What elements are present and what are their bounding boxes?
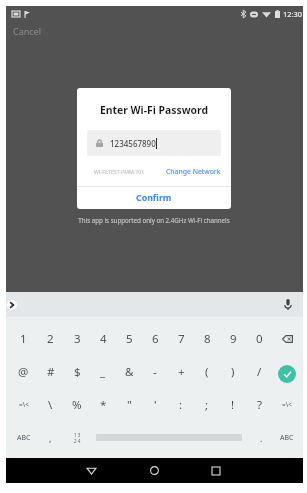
button[interactable]: 1	[10, 322, 37, 355]
staticText: !	[231, 397, 235, 413]
staticText: )	[231, 364, 235, 380]
button[interactable]: 7	[168, 322, 194, 355]
staticText: %	[72, 397, 82, 413]
button[interactable]: @	[10, 355, 37, 388]
button[interactable]: -	[142, 355, 168, 388]
button[interactable]: Back	[73, 458, 109, 483]
other: Enter	[278, 365, 296, 383]
staticText: 12:30	[283, 9, 302, 19]
button[interactable]: More suggestions	[6, 292, 18, 317]
staticText: WI-FI:TEST-PMM-701	[94, 168, 145, 175]
button[interactable]: )	[220, 355, 246, 388]
staticText: _	[100, 364, 106, 380]
button[interactable]: +	[168, 355, 194, 388]
button[interactable]: 6	[142, 322, 168, 355]
staticText: #	[47, 364, 55, 380]
staticText: $	[74, 364, 81, 380]
button[interactable]: !	[220, 388, 246, 421]
button[interactable]: ABC	[10, 421, 37, 454]
button[interactable]: Fractions	[64, 421, 90, 454]
staticText: 1	[20, 331, 27, 347]
staticText: 9	[230, 331, 237, 347]
staticText: :	[179, 397, 183, 413]
button[interactable]: ?	[246, 388, 272, 421]
button[interactable]: =\<	[10, 388, 37, 421]
staticText: Cancel	[13, 25, 42, 37]
staticText: \	[48, 397, 53, 413]
staticText: This app is supported only on 2.4GHz Wi-…	[70, 216, 238, 224]
staticText: 0	[256, 331, 263, 347]
button[interactable]: 8	[194, 322, 220, 355]
staticText: 4	[100, 331, 107, 347]
staticText: 8	[204, 331, 211, 347]
button[interactable]: ;	[194, 388, 220, 421]
staticText: ABC	[17, 433, 31, 443]
button[interactable]: %	[64, 388, 90, 421]
button[interactable]: \	[37, 388, 64, 421]
staticText: 1234567890	[110, 138, 156, 149]
button[interactable]: 1234567890	[87, 130, 221, 156]
button[interactable]: Voice input	[272, 292, 303, 317]
staticText: -	[153, 364, 157, 380]
button[interactable]: ABC	[274, 421, 300, 454]
button[interactable]: Home	[136, 458, 172, 483]
button[interactable]: '	[142, 388, 168, 421]
button[interactable]: #	[37, 355, 64, 388]
staticText: +	[178, 364, 185, 380]
staticText: /	[257, 364, 262, 380]
staticText: *	[100, 397, 107, 413]
button[interactable]: 2	[37, 322, 64, 355]
button[interactable]: Space	[90, 421, 248, 454]
button[interactable]: 5	[116, 322, 142, 355]
button[interactable]: ,	[37, 421, 64, 454]
staticText: (	[205, 364, 209, 380]
button[interactable]: Recents	[198, 458, 234, 483]
button[interactable]: "	[116, 388, 142, 421]
other: Backspace	[282, 335, 293, 343]
button[interactable]: /	[246, 355, 272, 388]
staticText: 1 3	[74, 432, 81, 438]
staticText: .	[260, 432, 263, 444]
staticText: Enter Wi-Fi Password	[77, 103, 231, 117]
staticText: ,	[49, 432, 52, 444]
staticText: 5	[126, 331, 133, 347]
staticText: 3	[74, 331, 81, 347]
staticText: '	[154, 397, 157, 413]
staticText: ?	[257, 397, 262, 413]
button[interactable]: $	[64, 355, 90, 388]
staticText: 2 4	[74, 438, 81, 444]
button[interactable]: Backspace	[272, 322, 302, 355]
staticText: Confirm	[136, 192, 172, 204]
button[interactable]: *	[90, 388, 116, 421]
button[interactable]: (	[194, 355, 220, 388]
staticText: 6	[152, 331, 159, 347]
button[interactable]: &	[116, 355, 142, 388]
staticText: ABC	[280, 433, 294, 443]
staticText: "	[127, 397, 132, 413]
button[interactable]: 4	[90, 322, 116, 355]
button[interactable]: 3	[64, 322, 90, 355]
button[interactable]: .	[248, 421, 274, 454]
staticText: 7	[178, 331, 185, 347]
button[interactable]: Enter	[272, 355, 302, 388]
button[interactable]: :	[168, 388, 194, 421]
button[interactable]: Confirm	[77, 187, 231, 209]
button[interactable]: 9	[220, 322, 246, 355]
staticText: =\<	[19, 400, 29, 409]
button[interactable]: =\<	[272, 388, 302, 421]
staticText: &	[125, 364, 134, 380]
staticText: ;	[205, 397, 209, 413]
staticText: =\<	[282, 400, 292, 409]
button[interactable]: 0	[246, 322, 272, 355]
staticText: 2	[47, 331, 54, 347]
staticText: @	[18, 364, 29, 380]
button[interactable]: _	[90, 355, 116, 388]
button[interactable]: Change Network	[166, 167, 221, 176]
